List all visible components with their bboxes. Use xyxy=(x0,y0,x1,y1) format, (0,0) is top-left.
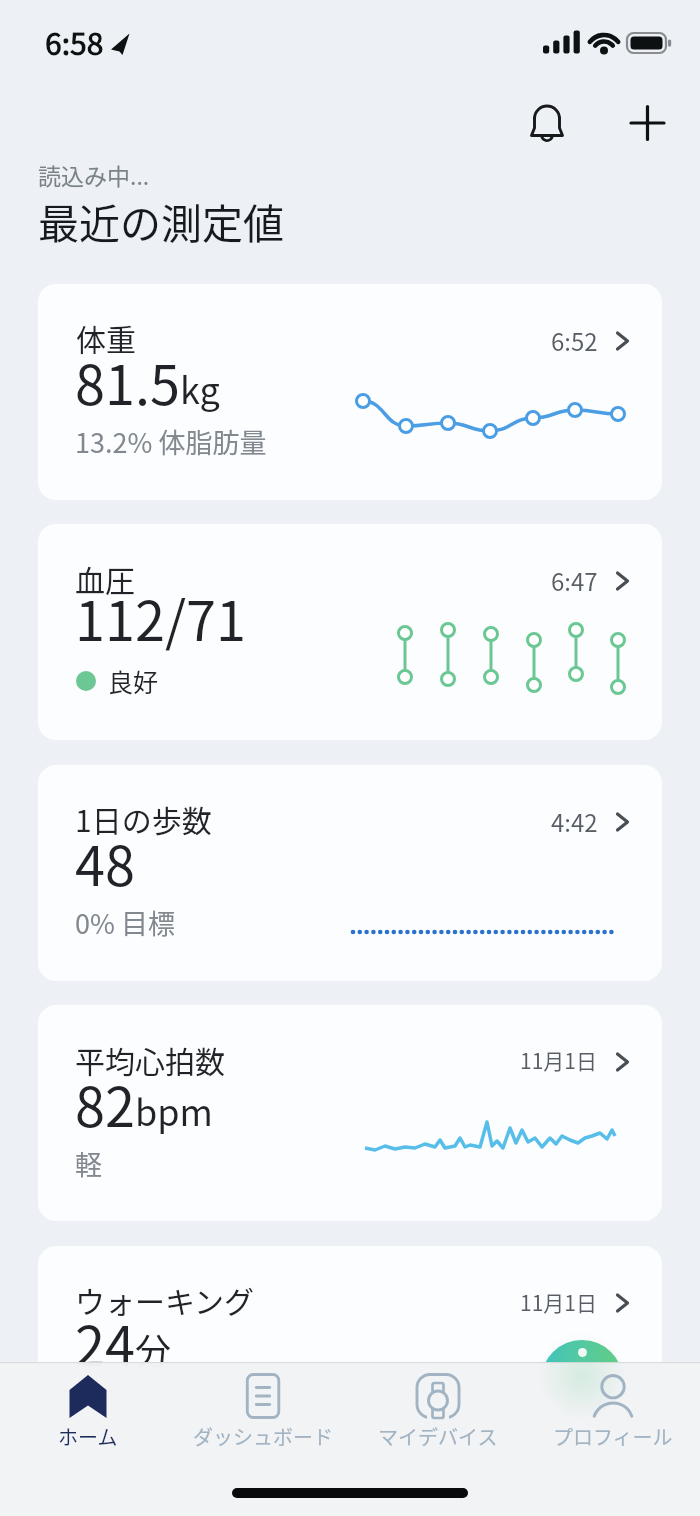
button[interactable]: マイデバイス xyxy=(350,1371,525,1451)
button[interactable] xyxy=(38,1246,662,1462)
staticText: 24 xyxy=(75,1303,135,1381)
staticText: 81.5 xyxy=(75,342,180,420)
button[interactable] xyxy=(38,1005,662,1221)
staticText: 1日の歩数 xyxy=(75,797,212,840)
staticText: 112/71 xyxy=(75,578,247,656)
staticText: 血圧 xyxy=(75,557,135,600)
button[interactable] xyxy=(625,97,669,147)
staticText: 分 xyxy=(135,1323,172,1375)
staticText: 6:47 xyxy=(551,563,598,598)
staticText: 体重 xyxy=(76,316,136,359)
staticText: 良好 xyxy=(108,663,159,699)
staticText: 4:42 xyxy=(551,804,598,839)
button[interactable] xyxy=(38,765,662,981)
staticText: ホーム xyxy=(58,1422,118,1451)
staticText: 13.2% 体脂肪量 xyxy=(75,422,267,461)
staticText: 読込み中... xyxy=(38,158,150,191)
button[interactable] xyxy=(38,524,662,740)
staticText: bpm xyxy=(135,1084,213,1136)
button[interactable]: ダッシュボード xyxy=(175,1371,350,1451)
staticText: kg xyxy=(180,362,220,414)
button[interactable]: プロフィール xyxy=(525,1371,700,1451)
staticText: プロフィール xyxy=(553,1422,673,1451)
staticText: 最近の測定値 xyxy=(38,191,284,250)
staticText: 平均心拍数 xyxy=(75,1038,225,1081)
staticText: ウォーキング xyxy=(75,1278,255,1321)
staticText: マイデバイス xyxy=(378,1422,498,1451)
staticText: ダッシュボード xyxy=(193,1422,333,1451)
button[interactable] xyxy=(525,97,569,147)
staticText: 0% 目標 xyxy=(75,903,175,942)
staticText: 82 xyxy=(75,1064,135,1142)
staticText: 軽 xyxy=(75,1144,102,1183)
staticText: 6:52 xyxy=(551,323,598,358)
staticText: 6:58 xyxy=(45,20,104,63)
staticText: 11月1日 xyxy=(520,1045,597,1075)
button[interactable] xyxy=(38,284,662,500)
button[interactable]: ホーム xyxy=(0,1371,175,1451)
staticText: 11月1日 xyxy=(520,1287,597,1317)
staticText: 48 xyxy=(75,823,135,901)
